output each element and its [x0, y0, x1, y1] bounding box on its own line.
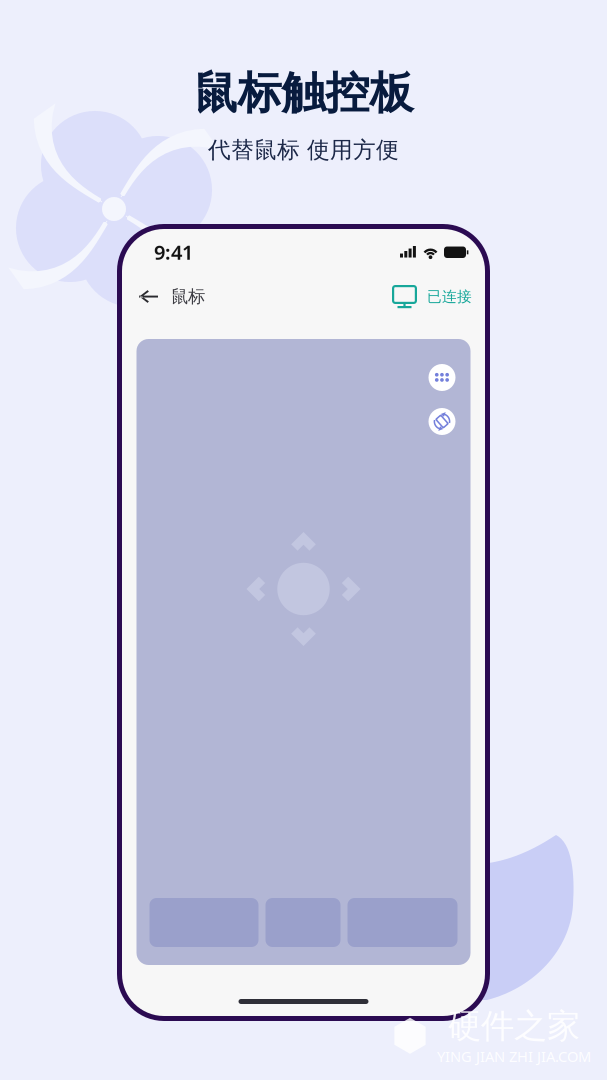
- staticText: 已连接: [427, 287, 472, 305]
- button[interactable]: Rotate screen: [428, 408, 455, 435]
- staticText: 鼠标触控板: [193, 66, 413, 120]
- staticText: 9:41: [154, 239, 193, 265]
- staticText: YING JIAN ZHI JIA.COM: [437, 1046, 591, 1066]
- button[interactable]: Keypad: [428, 364, 455, 391]
- button[interactable]: 鼠标: [122, 275, 213, 318]
- staticText: 硬件之家: [448, 1006, 580, 1046]
- button[interactable]: 已连接: [384, 275, 485, 318]
- staticText: 代替鼠标 使用方便: [208, 136, 399, 164]
- staticText: 鼠标: [171, 286, 205, 307]
